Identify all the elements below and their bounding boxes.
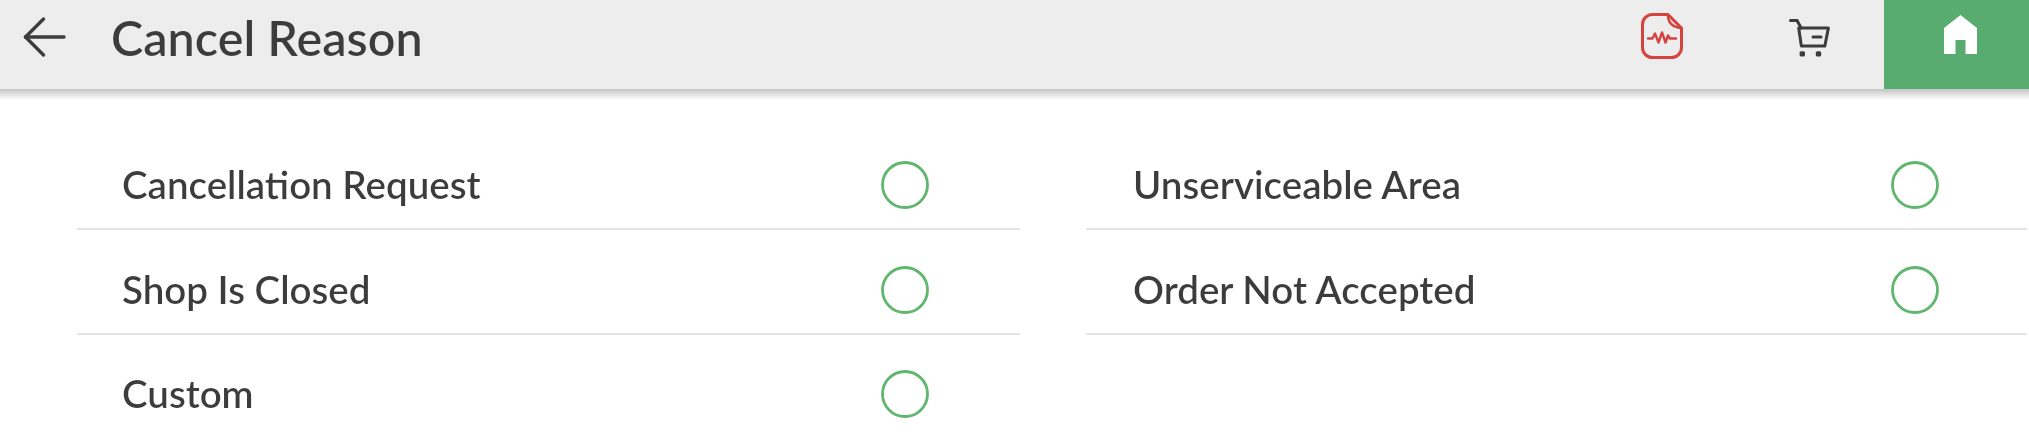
staticText: Unserviceable Area [1133,161,1461,207]
button[interactable]: Cancellation Request [77,125,1020,230]
staticText: Custom [122,370,254,416]
staticText: Order Not Accepted [1133,266,1476,312]
button[interactable]: Unserviceable Area [1086,125,2027,230]
button[interactable]: Custom [77,334,1020,439]
button[interactable]: Shop Is Closed [77,230,1020,335]
button[interactable] [1625,0,1699,89]
staticText: Cancellation Request [122,161,481,207]
staticText: Cancel Reason [111,8,423,66]
button[interactable] [10,0,80,89]
button[interactable] [1773,0,1847,89]
button[interactable]: Order Not Accepted [1086,230,2027,335]
staticText: Shop Is Closed [122,266,371,312]
button[interactable] [1884,0,2029,89]
